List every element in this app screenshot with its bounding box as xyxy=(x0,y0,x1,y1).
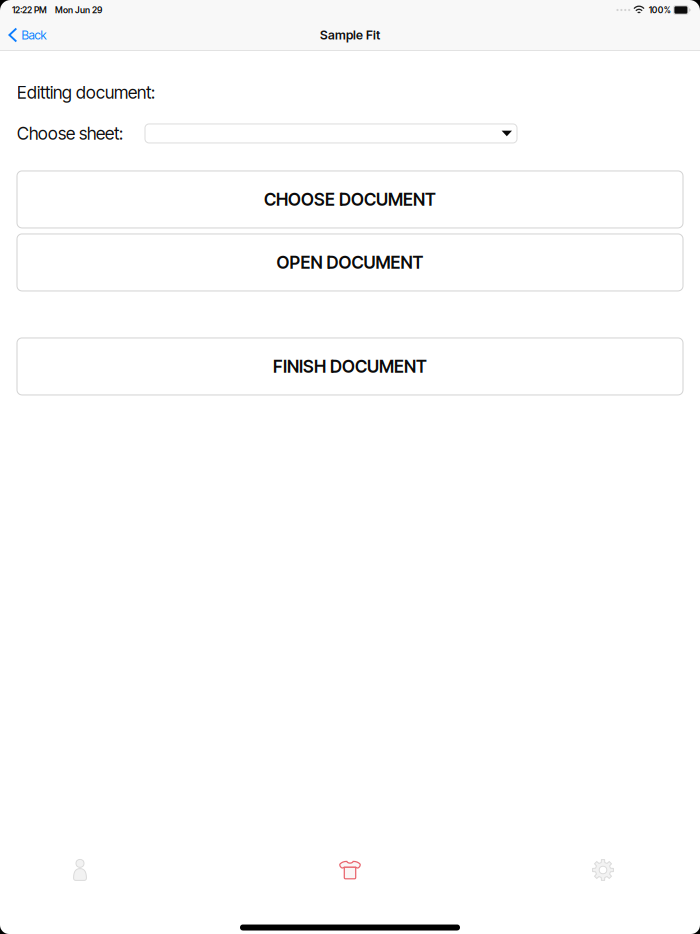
button[interactable]: Settings xyxy=(523,848,683,892)
staticText: 12:22 PM xyxy=(12,5,47,15)
staticText: Choose sheet: xyxy=(17,123,123,144)
staticText: Back xyxy=(22,28,47,42)
button[interactable] xyxy=(145,124,517,143)
staticText: FINISH DOCUMENT xyxy=(273,356,427,377)
button[interactable]: Fits xyxy=(270,848,430,892)
button[interactable]: CHOOSE DOCUMENT xyxy=(17,171,683,228)
staticText: Editting document: xyxy=(17,82,155,103)
staticText: 100% xyxy=(649,5,671,15)
button[interactable]: OPEN DOCUMENT xyxy=(17,234,683,291)
button[interactable]: Back xyxy=(0,20,57,50)
staticText: Mon Jun 29 xyxy=(55,5,102,15)
staticText: CHOOSE DOCUMENT xyxy=(264,189,436,210)
button[interactable]: FINISH DOCUMENT xyxy=(17,338,683,395)
staticText: Sample Fit xyxy=(320,27,380,42)
staticText: OPEN DOCUMENT xyxy=(276,252,423,273)
button[interactable]: Profile xyxy=(0,848,160,892)
